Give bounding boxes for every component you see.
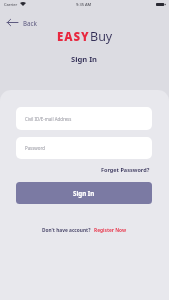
button[interactable]: Forget Password?	[99, 164, 152, 175]
staticText: Sign In	[73, 189, 95, 197]
staticText: Civil ID/E-mail Address	[25, 116, 72, 122]
staticText: Sign In	[71, 54, 98, 64]
staticText: Forget Password?	[101, 166, 150, 173]
staticText: EASY	[57, 29, 90, 45]
button[interactable]: Back	[4, 15, 41, 30]
staticText: Password	[25, 145, 45, 151]
staticText: Back	[23, 19, 38, 27]
button[interactable]: Sign In	[16, 182, 152, 204]
staticText: Buy	[90, 28, 113, 45]
button[interactable]: Register Now	[94, 227, 127, 234]
button[interactable]: Password	[16, 137, 152, 159]
staticText: Carrier	[4, 2, 18, 7]
button[interactable]: Civil ID/E-mail Address	[16, 107, 152, 130]
staticText: Don't have account?	[42, 227, 91, 234]
staticText: 9:35 AM	[76, 2, 92, 7]
